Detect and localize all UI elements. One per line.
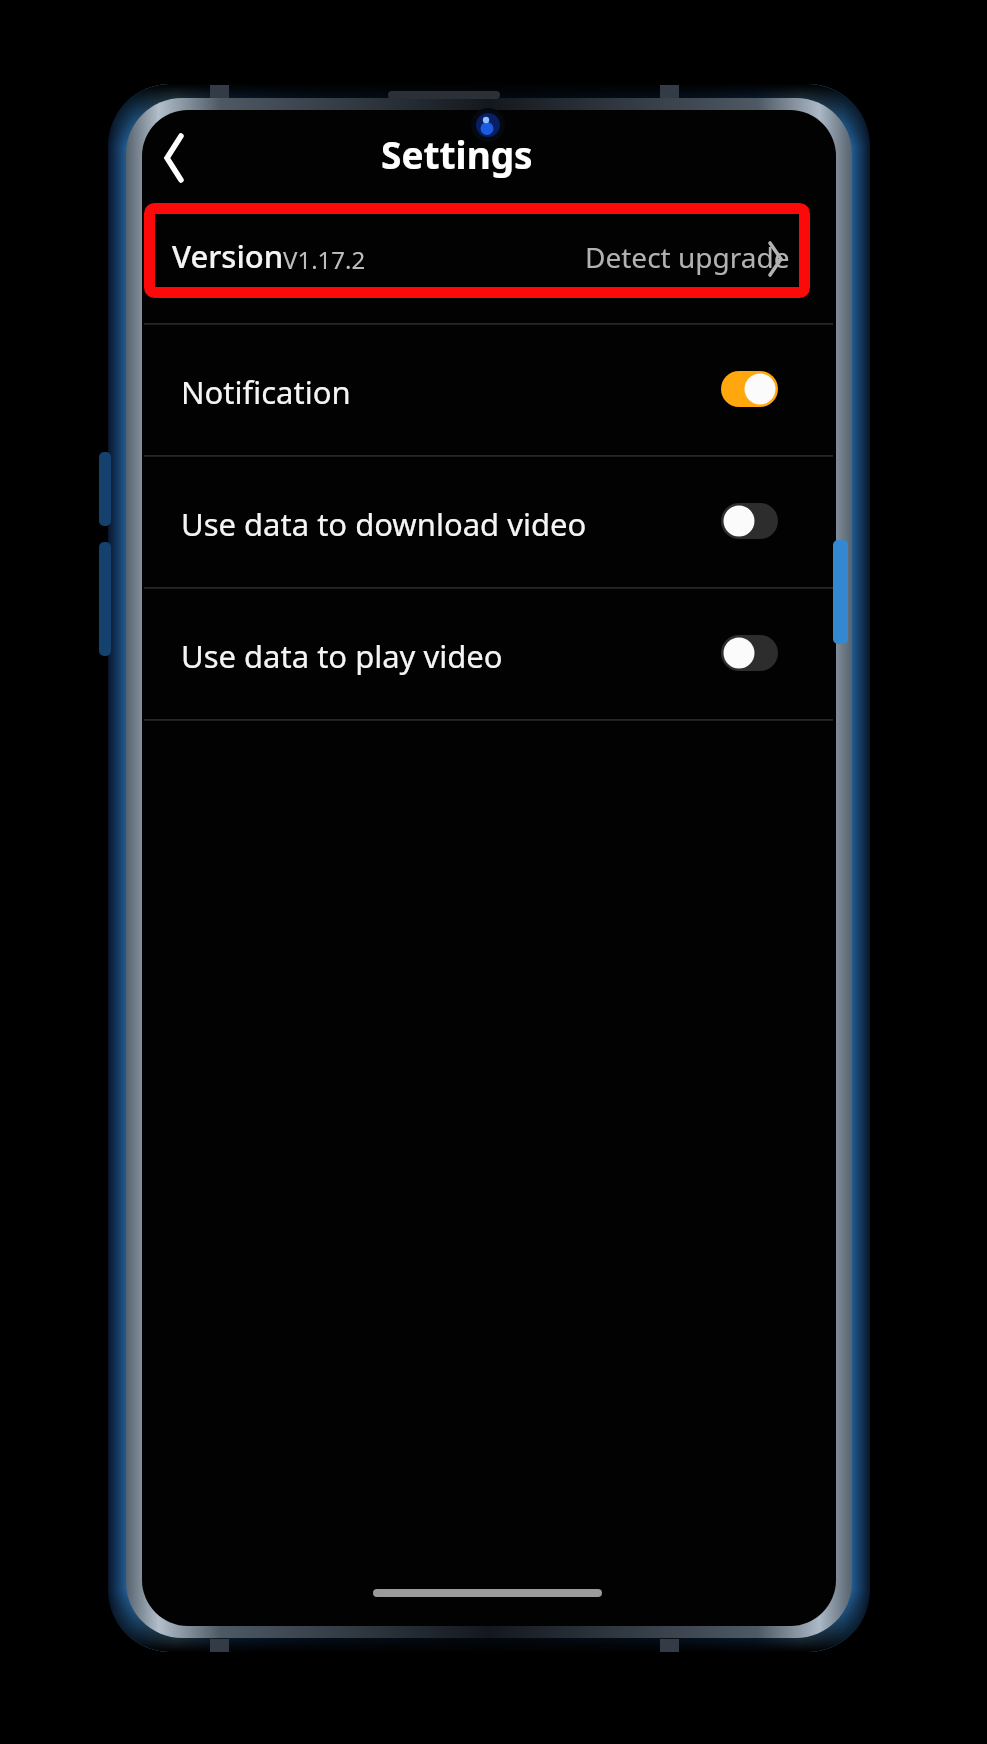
staticText: Settings <box>381 129 533 179</box>
staticText: Use data to play video <box>181 635 503 677</box>
button[interactable] <box>144 457 833 587</box>
staticText: Version <box>172 235 284 277</box>
button[interactable]: Notification toggle, on <box>718 368 781 410</box>
button[interactable] <box>144 325 833 455</box>
button[interactable] <box>144 589 833 719</box>
staticText: Use data to download video <box>181 503 587 545</box>
button[interactable]: Use data to play video toggle, off <box>718 632 781 674</box>
button[interactable]: Use data to download video toggle, off <box>718 500 781 542</box>
staticText: V1.17.2 <box>283 243 366 276</box>
staticText: Detect upgrade <box>585 238 790 276</box>
button[interactable]: Back <box>148 118 222 198</box>
button[interactable] <box>144 206 810 296</box>
staticText: Notification <box>181 371 351 413</box>
